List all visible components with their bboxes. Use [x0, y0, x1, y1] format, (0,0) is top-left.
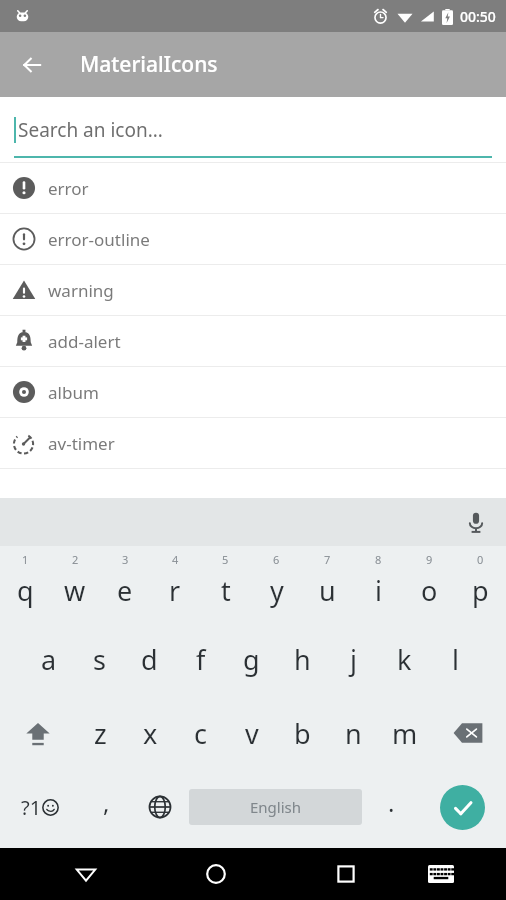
button[interactable]: 8: [353, 546, 404, 622]
staticText: s: [93, 641, 106, 678]
button[interactable]: Back: [8, 41, 56, 89]
button[interactable]: add-alert: [0, 316, 506, 366]
button[interactable]: 5: [200, 546, 251, 622]
staticText: y: [270, 572, 284, 609]
button[interactable]: album: [0, 367, 506, 417]
button[interactable]: Switch keyboard: [406, 848, 476, 900]
button[interactable]: a: [24, 622, 74, 696]
staticText: English: [250, 797, 302, 817]
staticText: MaterialIcons: [80, 50, 218, 79]
button[interactable]: d: [124, 622, 175, 696]
button[interactable]: 3: [100, 546, 150, 622]
staticText: warning: [48, 279, 114, 302]
button[interactable]: k: [379, 622, 430, 696]
button[interactable]: 1: [0, 546, 50, 622]
staticText: d: [141, 641, 158, 678]
staticText: 7: [324, 552, 331, 567]
staticText: 1: [22, 552, 29, 567]
button[interactable]: 6: [251, 546, 302, 622]
staticText: error-outline: [48, 228, 150, 251]
staticText: n: [345, 715, 362, 752]
button[interactable]: f: [175, 622, 226, 696]
staticText: 2: [72, 552, 79, 567]
staticText: i: [375, 572, 382, 609]
button[interactable]: b: [277, 696, 328, 770]
staticText: 6: [273, 552, 280, 567]
button[interactable]: j: [328, 622, 379, 696]
button[interactable]: ,: [79, 770, 133, 844]
staticText: f: [196, 641, 206, 678]
staticText: q: [17, 572, 34, 609]
staticText: p: [472, 572, 489, 609]
button[interactable]: av-timer: [0, 418, 506, 468]
staticText: g: [243, 641, 260, 678]
staticText: c: [194, 715, 207, 752]
button[interactable]: Back: [51, 848, 121, 900]
button[interactable]: English: [189, 789, 362, 825]
button[interactable]: warning: [0, 265, 506, 315]
staticText: 0: [477, 552, 484, 567]
staticText: 8: [375, 552, 382, 567]
button[interactable]: Search an icon...: [0, 97, 506, 162]
button[interactable]: v: [226, 696, 277, 770]
button[interactable]: 9: [404, 546, 455, 622]
button[interactable]: Home: [181, 848, 251, 900]
button[interactable]: Shift: [0, 696, 75, 770]
staticText: z: [94, 715, 107, 752]
button[interactable]: l: [430, 622, 481, 696]
staticText: j: [350, 641, 357, 678]
staticText: h: [294, 641, 311, 678]
button[interactable]: h: [277, 622, 328, 696]
staticText: 4: [172, 552, 179, 567]
button[interactable]: 0: [455, 546, 506, 622]
button[interactable]: Voice input: [454, 500, 498, 544]
button[interactable]: 2: [50, 546, 100, 622]
staticText: l: [452, 641, 459, 678]
button[interactable]: s: [74, 622, 124, 696]
staticText: add-alert: [48, 330, 121, 353]
button[interactable]: 4: [150, 546, 200, 622]
staticText: x: [143, 715, 158, 752]
button[interactable]: Backspace: [430, 696, 506, 770]
staticText: e: [117, 572, 133, 609]
staticText: ?1: [21, 794, 42, 821]
button[interactable]: Enter: [440, 785, 485, 830]
staticText: r: [169, 572, 181, 609]
button[interactable]: n: [328, 696, 379, 770]
button[interactable]: z: [75, 696, 125, 770]
staticText: 3: [122, 552, 129, 567]
staticText: t: [221, 572, 231, 609]
staticText: k: [397, 641, 412, 678]
staticText: 5: [222, 552, 229, 567]
button[interactable]: g: [226, 622, 277, 696]
button[interactable]: x: [125, 696, 175, 770]
button[interactable]: c: [175, 696, 226, 770]
staticText: 9: [426, 552, 433, 567]
button[interactable]: Change language: [133, 770, 187, 844]
staticText: 00:50: [460, 7, 496, 26]
button[interactable]: m: [379, 696, 430, 770]
staticText: .: [388, 786, 395, 819]
staticText: album: [48, 381, 99, 404]
button[interactable]: ?1: [0, 770, 79, 844]
staticText: o: [421, 572, 438, 609]
staticText: b: [294, 715, 311, 752]
staticText: m: [392, 715, 418, 752]
button[interactable]: error-outline: [0, 214, 506, 264]
staticText: av-timer: [48, 432, 115, 455]
staticText: u: [319, 572, 336, 609]
button[interactable]: Recent apps: [311, 848, 381, 900]
button[interactable]: 7: [302, 546, 353, 622]
button[interactable]: .: [364, 770, 418, 844]
button[interactable]: error: [0, 163, 506, 213]
staticText: Search an icon...: [18, 117, 163, 143]
staticText: w: [64, 572, 86, 609]
staticText: ,: [103, 786, 110, 819]
staticText: v: [245, 715, 259, 752]
staticText: a: [41, 641, 57, 678]
staticText: error: [48, 177, 89, 200]
